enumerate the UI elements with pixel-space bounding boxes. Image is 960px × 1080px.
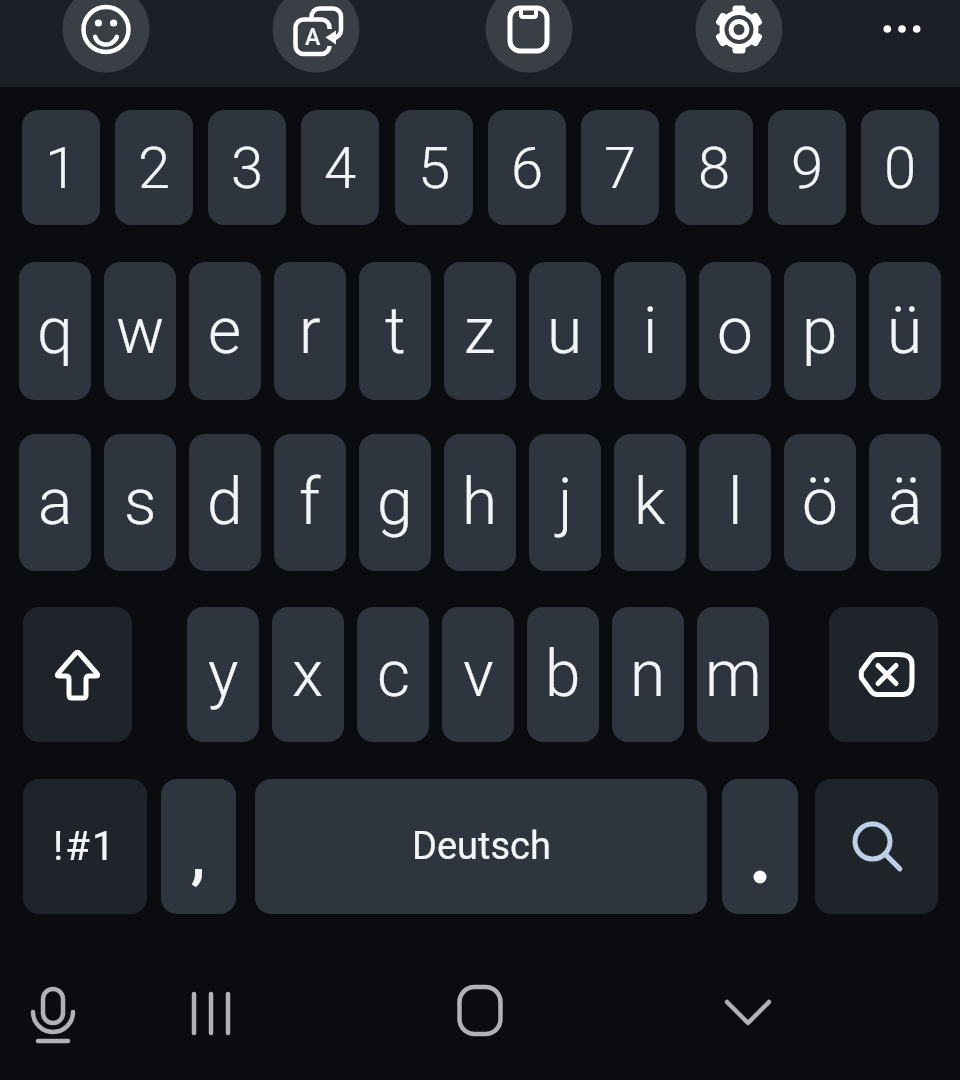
button[interactable]: ö — [784, 434, 856, 571]
button[interactable]: r — [274, 262, 346, 400]
button[interactable] — [872, 0, 932, 59]
button[interactable]: 2 — [115, 110, 193, 225]
staticText: n — [630, 637, 666, 712]
staticText: 0 — [884, 134, 917, 202]
staticText: x — [292, 637, 324, 712]
staticText: 9 — [791, 134, 824, 202]
button[interactable]: s — [104, 434, 176, 571]
staticText: c — [377, 637, 410, 712]
staticText: 7 — [604, 134, 637, 202]
button[interactable]: i — [614, 262, 686, 400]
staticText: y — [208, 637, 239, 712]
button[interactable]: !#1 — [23, 779, 147, 914]
button[interactable]: w — [104, 262, 176, 400]
staticText: o — [717, 294, 753, 369]
staticText: 5 — [418, 134, 451, 202]
button[interactable]: 5 — [395, 110, 473, 225]
button[interactable]: q — [19, 262, 91, 400]
staticText: A — [305, 24, 321, 51]
button[interactable] — [62, 0, 150, 73]
staticText: h — [462, 465, 498, 540]
staticText: b — [545, 637, 581, 712]
button[interactable]: 6 — [488, 110, 566, 225]
button[interactable]: h — [444, 434, 516, 571]
button[interactable]: ü — [869, 262, 941, 400]
button[interactable] — [272, 0, 360, 73]
staticText: 1 — [45, 134, 78, 202]
staticText: s — [124, 465, 157, 540]
button[interactable]: 1 — [22, 110, 100, 225]
button[interactable]: l — [699, 434, 771, 571]
button[interactable]: 0 — [861, 110, 939, 225]
button[interactable]: u — [529, 262, 601, 400]
staticText: q — [37, 294, 73, 369]
button[interactable]: , — [161, 779, 236, 914]
button[interactable]: 9 — [768, 110, 846, 225]
button[interactable]: ä — [869, 434, 941, 571]
staticText: v — [463, 637, 494, 712]
staticText: 8 — [698, 134, 731, 202]
staticText: w — [116, 294, 165, 369]
staticText: ä — [888, 465, 923, 540]
staticText: l — [728, 465, 743, 540]
staticText: r — [299, 294, 321, 369]
staticText: d — [207, 465, 243, 540]
button[interactable]: j — [529, 434, 601, 571]
button[interactable]: t — [359, 262, 431, 400]
staticText: 6 — [511, 134, 544, 202]
staticText: u — [547, 294, 583, 369]
button[interactable] — [695, 0, 783, 73]
staticText: f — [299, 465, 321, 540]
staticText: ö — [802, 465, 838, 540]
button[interactable]: 8 — [675, 110, 753, 225]
button[interactable]: x — [272, 607, 344, 742]
button[interactable]: v — [442, 607, 514, 742]
button[interactable]: n — [612, 607, 684, 742]
button[interactable]: Deutsch — [255, 779, 707, 914]
staticText: , — [191, 817, 206, 892]
button[interactable]: 3 — [208, 110, 286, 225]
button[interactable]: a — [19, 434, 91, 571]
staticText: z — [464, 294, 496, 369]
button[interactable]: c — [357, 607, 429, 742]
staticText: Deutsch — [412, 824, 551, 869]
button[interactable] — [485, 0, 573, 73]
staticText: !#1 — [53, 823, 117, 870]
button[interactable]: y — [187, 607, 259, 742]
button[interactable] — [13, 970, 93, 1065]
staticText: i — [643, 294, 658, 369]
staticText: 3 — [231, 134, 264, 202]
button[interactable] — [829, 607, 938, 742]
staticText: t — [385, 294, 406, 369]
staticText: ü — [887, 294, 923, 369]
staticText: a — [38, 465, 73, 540]
button[interactable]: d — [189, 434, 261, 571]
button[interactable]: b — [527, 607, 599, 742]
staticText: 2 — [138, 134, 171, 202]
button[interactable] — [171, 970, 251, 1065]
button[interactable] — [722, 779, 798, 914]
button[interactable] — [708, 970, 788, 1065]
staticText: g — [377, 465, 413, 540]
button[interactable] — [23, 607, 132, 742]
staticText: m — [705, 637, 762, 712]
button[interactable]: f — [274, 434, 346, 571]
button[interactable]: 4 — [301, 110, 379, 225]
staticText: p — [802, 294, 838, 369]
button[interactable]: o — [699, 262, 771, 400]
button[interactable]: 7 — [581, 110, 659, 225]
button[interactable]: m — [697, 607, 769, 742]
staticText: 4 — [324, 134, 357, 202]
button[interactable]: z — [444, 262, 516, 400]
button[interactable]: g — [359, 434, 431, 571]
button[interactable]: e — [189, 262, 261, 400]
staticText: k — [634, 465, 666, 540]
button[interactable]: p — [784, 262, 856, 400]
button[interactable] — [440, 970, 520, 1065]
staticText: j — [558, 465, 573, 540]
button[interactable]: k — [614, 434, 686, 571]
button[interactable] — [815, 779, 938, 914]
staticText: e — [208, 294, 242, 369]
